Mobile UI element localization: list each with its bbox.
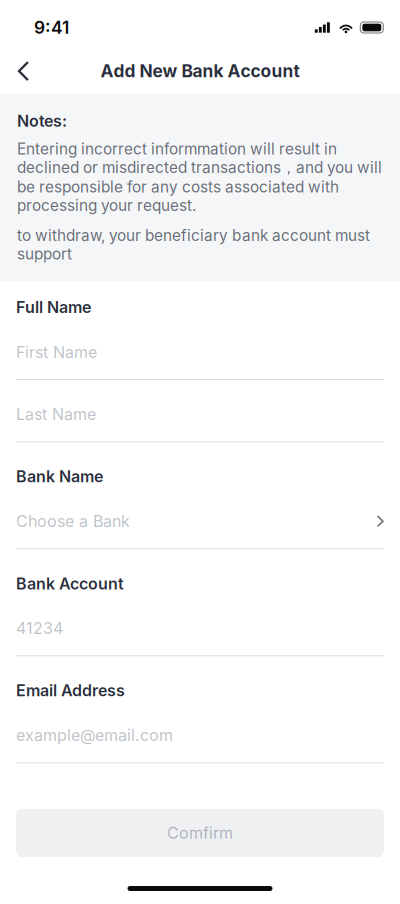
staticText: Bank Account	[16, 574, 124, 593]
button[interactable]: Back	[0, 47, 46, 93]
staticText: 41234	[16, 619, 63, 638]
staticText: First Name	[16, 342, 97, 362]
button[interactable]: Choose a Bank	[16, 507, 384, 535]
staticText: Email Address	[16, 681, 125, 700]
staticText: Notes:	[17, 111, 67, 131]
staticText: Entering incorrect informmation will res…	[17, 140, 382, 215]
staticText: to withdraw, your beneficiary bank accou…	[17, 226, 370, 263]
staticText: Choose a Bank	[16, 512, 130, 531]
staticText: Add New Bank Account	[100, 60, 299, 81]
staticText: Last Name	[16, 405, 96, 424]
staticText: Full Name	[16, 297, 91, 317]
staticText: example@email.com	[16, 726, 173, 745]
button[interactable]: Comfirm	[16, 809, 384, 857]
staticText: Comfirm	[167, 823, 233, 843]
staticText: Bank Name	[16, 467, 103, 486]
staticText: 9:41	[34, 17, 69, 38]
